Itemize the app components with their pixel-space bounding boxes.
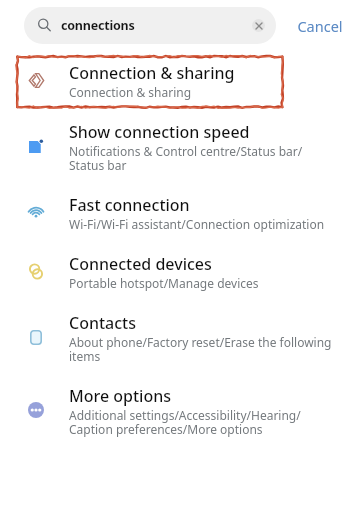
button[interactable]: Contacts: [0, 307, 361, 380]
staticText: Contacts: [69, 316, 137, 333]
staticText: Notifications & Control centre/Status ba…: [69, 145, 303, 173]
staticText: About phone/Factory reset/Erase the foll…: [69, 336, 332, 364]
staticText: connections: [61, 17, 135, 34]
staticText: Connected devices: [69, 257, 212, 274]
button[interactable]: Connection & sharing: [0, 57, 361, 116]
staticText: Wi-Fi/Wi-Fi assistant/Connection optimiz…: [69, 218, 325, 232]
button[interactable]: connections: [24, 7, 276, 44]
staticText: Fast connection: [69, 198, 190, 215]
staticText: Show connection speed: [69, 125, 250, 142]
staticText: More options: [69, 389, 171, 406]
button[interactable]: Show connection speed: [0, 116, 361, 189]
button[interactable]: Connected devices: [0, 248, 361, 307]
button[interactable]: Fast connection: [0, 189, 361, 248]
button[interactable]: Clear search: [252, 19, 265, 32]
button[interactable]: More options: [0, 380, 361, 453]
staticText: Cancel: [297, 16, 343, 36]
staticText: Connection & sharing: [69, 66, 235, 83]
staticText: Additional settings/Accessibility/Hearin…: [69, 409, 301, 437]
staticText: Portable hotspot/Manage devices: [69, 277, 259, 291]
staticText: Connection & sharing: [69, 86, 192, 100]
button[interactable]: Cancel: [285, 7, 354, 44]
